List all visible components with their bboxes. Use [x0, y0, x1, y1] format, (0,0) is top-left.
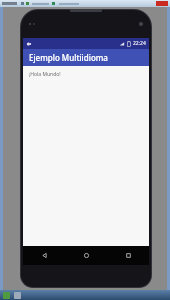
button[interactable]: Back — [23, 246, 65, 265]
button[interactable]: Recent apps — [107, 246, 149, 265]
button[interactable]: Taskbar application — [3, 292, 10, 299]
staticText: 22:24 — [133, 40, 146, 47]
staticText: ¡Hola Mundo! — [29, 71, 61, 78]
button[interactable]: Home — [65, 246, 107, 265]
button[interactable]: Taskbar application two — [14, 292, 21, 299]
staticText: Ejemplo Multiidioma — [29, 52, 108, 63]
